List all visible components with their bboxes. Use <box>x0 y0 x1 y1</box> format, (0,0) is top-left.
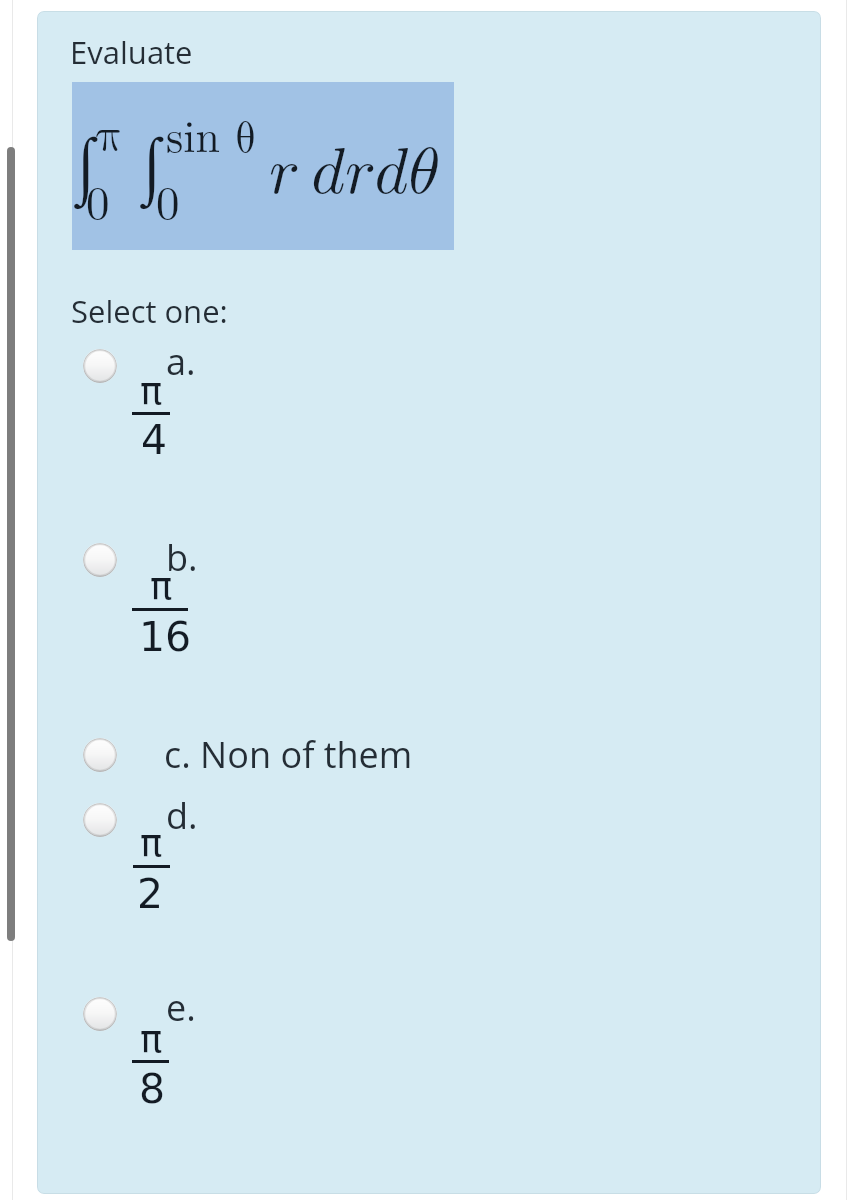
staticText: 8 <box>139 1065 166 1113</box>
staticText: 0 <box>156 181 180 228</box>
staticText: ∫ <box>71 131 104 206</box>
staticText: Select one: <box>71 290 228 332</box>
staticText: d. <box>166 791 198 840</box>
staticText: a. <box>166 337 196 386</box>
staticText: ∫ <box>137 131 170 206</box>
button[interactable]: Answer d. pi over 2 <box>77 796 777 976</box>
staticText: sin θ <box>166 117 257 161</box>
staticText: 𝑟 𝑑𝑟𝑑𝜃 <box>269 141 439 206</box>
staticText: 4 <box>141 416 168 464</box>
button[interactable]: Scroll position <box>7 147 15 941</box>
staticText: 0 <box>86 181 110 228</box>
button[interactable]: Answer b. pi over 16 <box>77 536 777 716</box>
button[interactable]: Answer e. pi over 8 <box>77 990 777 1170</box>
staticText: 16 <box>139 613 192 661</box>
button[interactable]: Answer c. Non of them <box>77 733 777 785</box>
staticText: e. <box>166 983 196 1032</box>
staticText: π <box>96 113 123 159</box>
staticText: π <box>140 822 163 865</box>
button[interactable]: Answer a. pi over 4 <box>77 341 777 521</box>
staticText: b. <box>166 533 198 582</box>
staticText: π <box>140 1018 163 1061</box>
staticText: Evaluate <box>70 31 193 73</box>
staticText: π <box>140 370 163 413</box>
staticText: c. Non of them <box>164 730 413 779</box>
staticText: π <box>150 565 173 608</box>
staticText: 2 <box>137 870 164 918</box>
